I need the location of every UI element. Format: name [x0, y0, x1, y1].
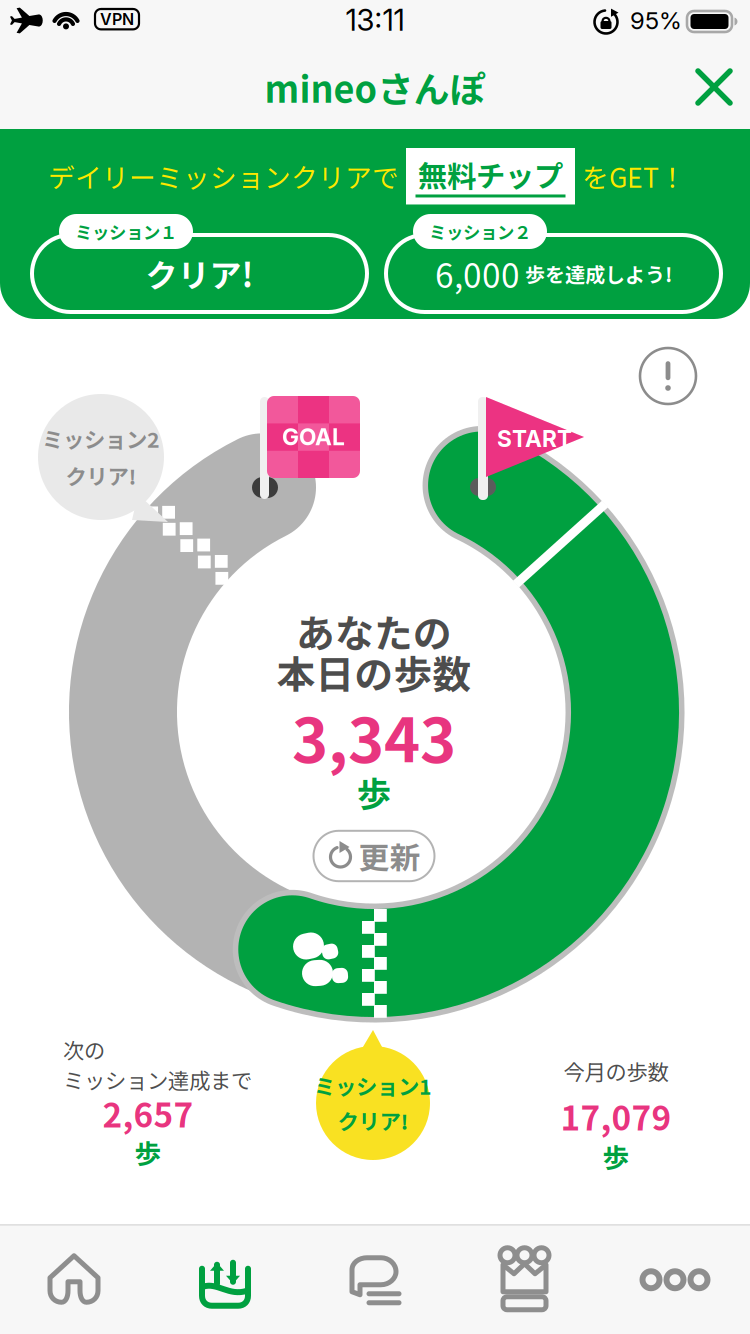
- staticText: ミッション2: [42, 423, 160, 454]
- staticText: ミッション1: [314, 1070, 432, 1101]
- button[interactable]: チャット: [300, 1226, 450, 1334]
- staticText: ミッション２: [429, 219, 531, 244]
- button[interactable]: 説明: [640, 348, 696, 404]
- staticText: クリア!: [145, 250, 253, 297]
- staticText: 17,079: [560, 1092, 671, 1140]
- staticText: 歩を達成しよう!: [520, 259, 672, 288]
- staticText: 歩: [602, 1137, 629, 1175]
- staticText: 無料チップ: [418, 153, 563, 195]
- button[interactable]: 更新: [313, 831, 434, 881]
- staticText: をGET！: [582, 157, 686, 195]
- staticText: ミッション１: [75, 219, 177, 244]
- staticText: 13:11: [345, 2, 404, 38]
- staticText: クリア!: [337, 1105, 408, 1136]
- staticText: mineoさんぽ: [264, 61, 485, 113]
- staticText: ミッション達成まで: [63, 1064, 252, 1095]
- button[interactable]: ホーム: [0, 1226, 150, 1334]
- staticText: 95%: [630, 6, 682, 35]
- staticText: 今月の歩数: [563, 1056, 668, 1086]
- staticText: 更新: [358, 834, 420, 878]
- staticText: GOAL: [282, 423, 345, 451]
- staticText: 2,657: [102, 1089, 193, 1137]
- staticText: VPN: [100, 9, 134, 29]
- staticText: 次の: [63, 1034, 105, 1065]
- staticText: START: [497, 425, 572, 452]
- staticText: 3,343: [292, 692, 456, 780]
- button[interactable]: その他: [600, 1226, 750, 1334]
- staticText: あなたの: [296, 603, 452, 659]
- staticText: クリア!: [65, 460, 136, 491]
- button[interactable]: 歩数: [150, 1226, 300, 1334]
- button[interactable]: 閉じる: [678, 48, 750, 126]
- staticText: 本日の歩数: [276, 644, 471, 700]
- staticText: 歩: [134, 1133, 161, 1171]
- staticText: デイリーミッションクリアで: [48, 157, 399, 195]
- staticText: 歩: [356, 767, 391, 817]
- button[interactable]: ランキング: [450, 1226, 600, 1334]
- staticText: 6,000: [435, 249, 520, 298]
